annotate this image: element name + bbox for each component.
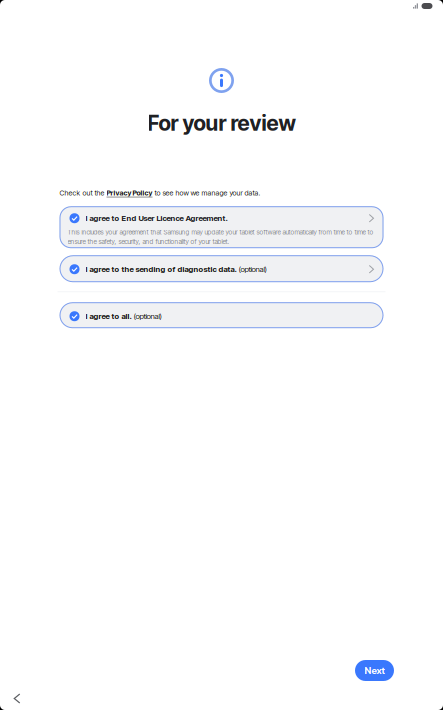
staticText: Check out the Privacy Policy to see how … (59, 189, 260, 197)
staticText: I agree to End User Licence Agreement. (85, 213, 227, 223)
staticText: For your review (147, 110, 295, 136)
staticText: Next (364, 665, 384, 676)
button[interactable]: I agree to all. (optional) (59, 302, 383, 328)
button[interactable]: Next (355, 660, 394, 681)
staticText: This includes your agreement that Samsun… (67, 228, 373, 246)
button[interactable]: Back (8, 688, 26, 709)
staticText: I agree to the sending of diagnostic dat… (85, 265, 266, 274)
button[interactable]: I agree to the sending of diagnostic dat… (59, 255, 383, 282)
button[interactable]: I agree to End User Licence Agreement. (59, 206, 383, 248)
staticText: I agree to all. (optional) (85, 312, 161, 321)
